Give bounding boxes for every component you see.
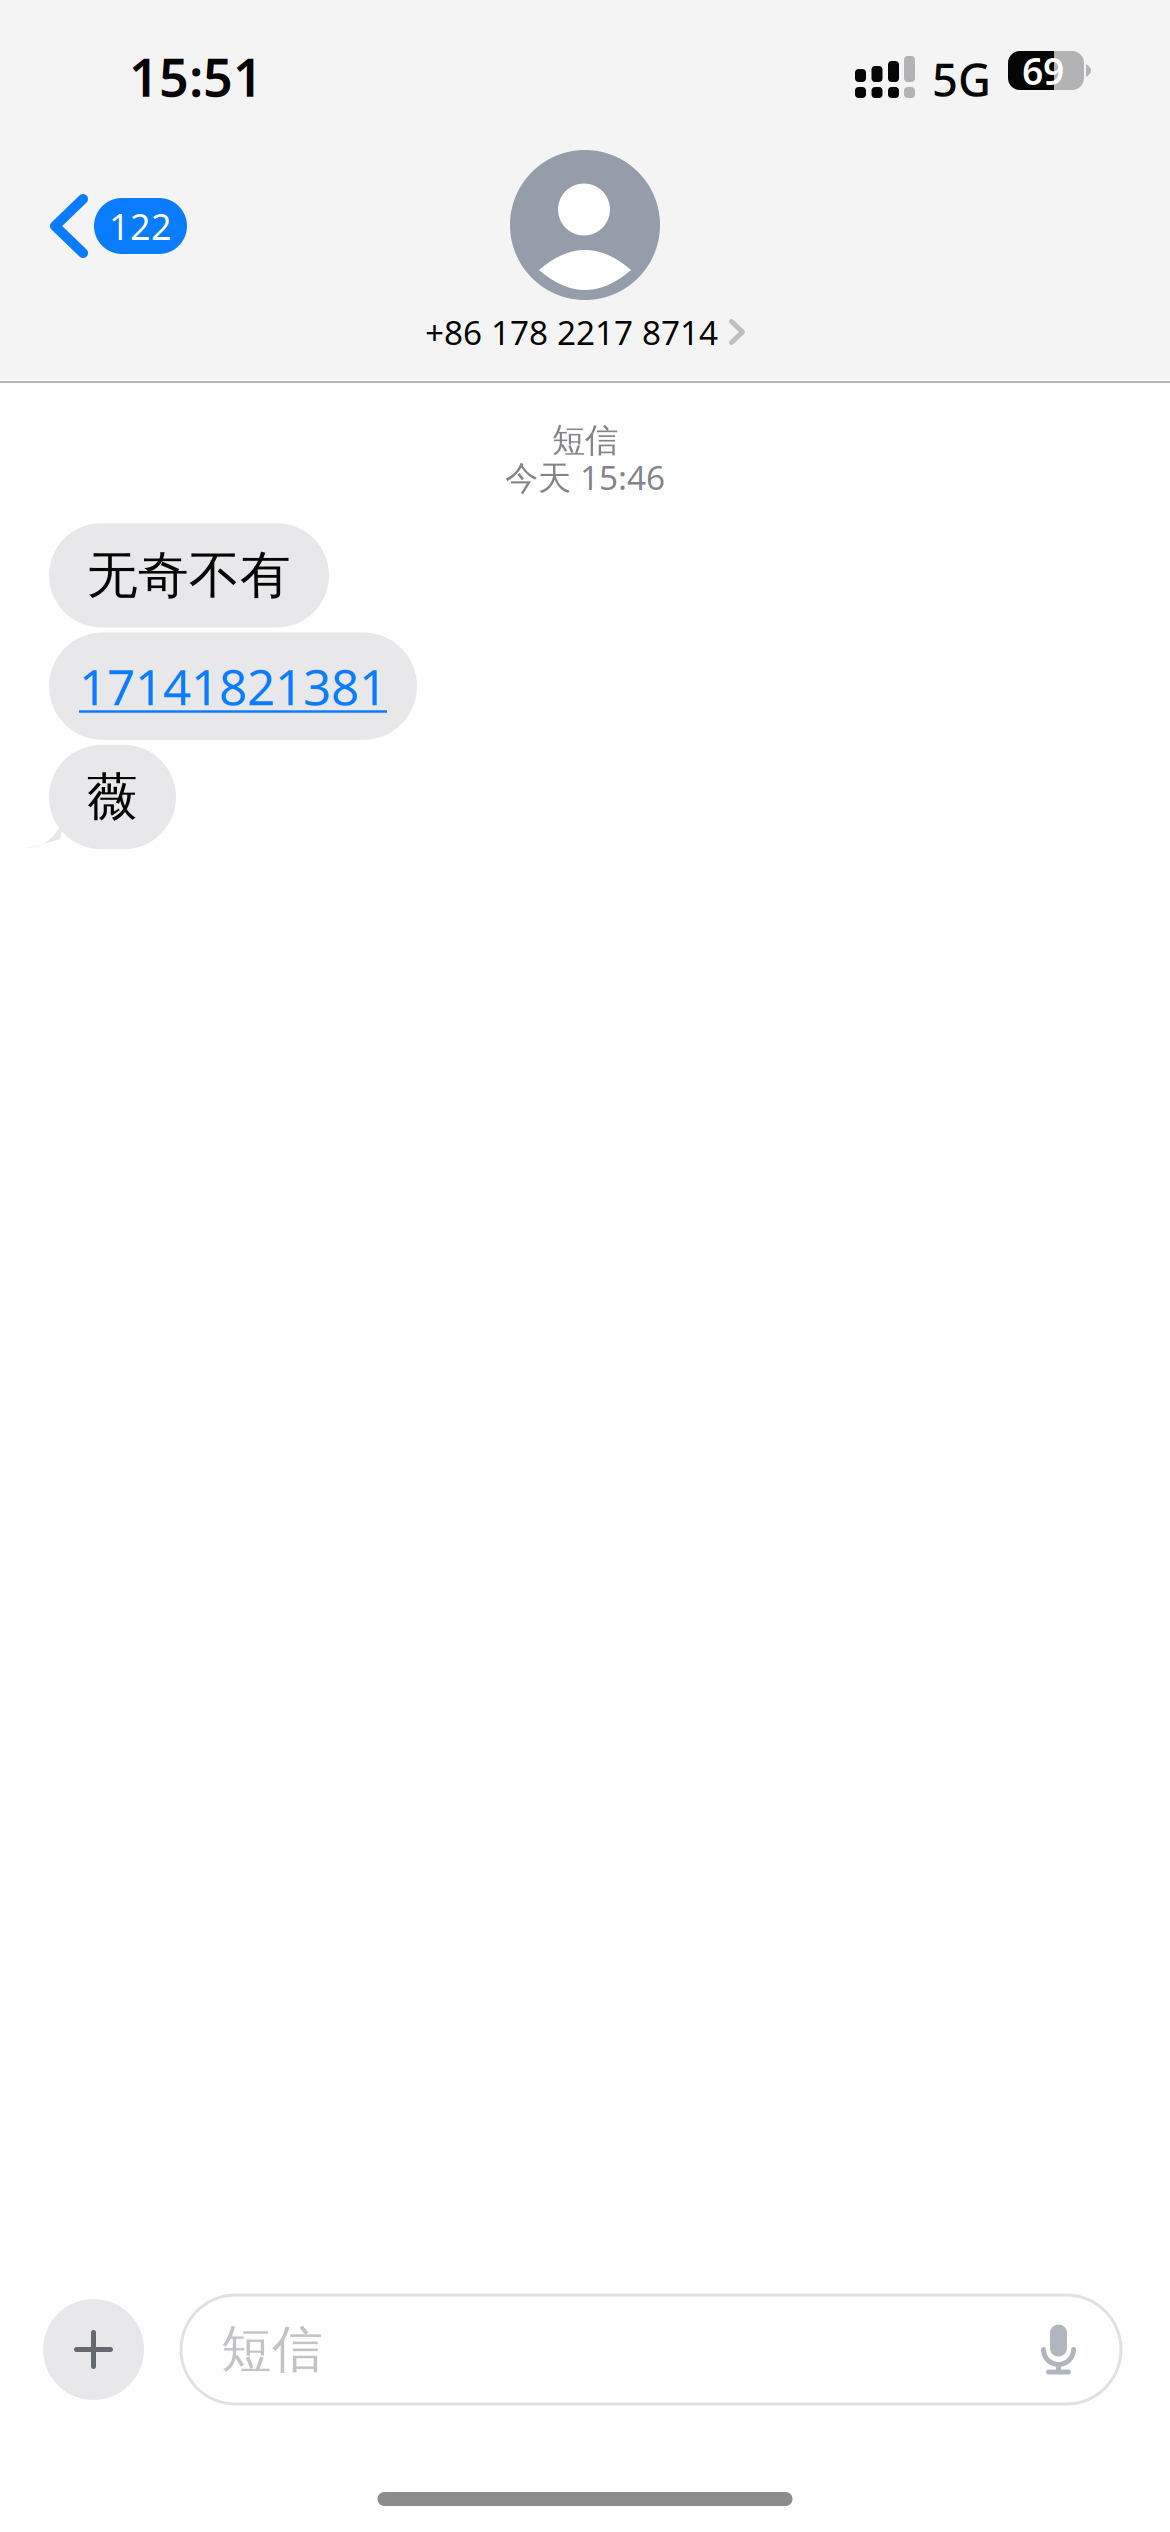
button[interactable]: +86 178 2217 8714: [425, 150, 745, 356]
button[interactable]: 薇: [49, 745, 176, 849]
staticText: 122: [109, 202, 172, 250]
staticText: 无奇不有: [87, 544, 291, 606]
staticText: +86 178 2217 8714: [425, 310, 718, 354]
button[interactable]: Add attachment: [43, 2295, 144, 2404]
staticText: 薇: [87, 766, 138, 828]
staticText: 15:51: [129, 42, 263, 111]
button[interactable]: 无奇不有: [49, 523, 329, 627]
staticText: 17141821381: [79, 653, 387, 719]
button[interactable]: 17141821381: [49, 632, 417, 740]
staticText: 69: [1022, 46, 1064, 95]
button[interactable]: 短信: [181, 2295, 1121, 2404]
staticText: 今天 15:46: [505, 455, 665, 499]
staticText: 短信: [552, 420, 618, 461]
staticText: 5G: [932, 49, 991, 109]
staticText: 短信: [221, 2318, 323, 2381]
button[interactable]: 122: [0, 176, 211, 276]
